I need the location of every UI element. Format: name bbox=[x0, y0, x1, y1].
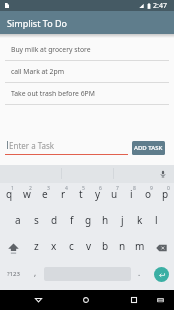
button[interactable]: f bbox=[63, 209, 80, 235]
button[interactable]: call Mark at 2pm bbox=[0, 61, 174, 83]
button[interactable]: Home bbox=[74, 290, 98, 310]
button[interactable]: Enter bbox=[154, 267, 169, 282]
button[interactable]: d bbox=[45, 209, 63, 235]
staticText: t bbox=[79, 187, 83, 201]
button[interactable]: o bbox=[140, 183, 157, 209]
staticText: j bbox=[121, 213, 124, 227]
staticText: p bbox=[162, 187, 169, 201]
button[interactable]: v bbox=[80, 235, 97, 261]
staticText: c bbox=[69, 239, 74, 253]
staticText: f bbox=[70, 213, 74, 227]
staticText: 2:47 bbox=[153, 1, 167, 11]
staticText: h bbox=[102, 213, 109, 227]
button[interactable]: Shift bbox=[0, 235, 27, 261]
staticText: q bbox=[6, 187, 13, 201]
staticText: x bbox=[51, 239, 57, 253]
button[interactable]: x bbox=[45, 235, 63, 261]
button[interactable]: Backspace bbox=[148, 235, 174, 261]
button[interactable]: Recents bbox=[122, 290, 146, 310]
button[interactable]: Voice input bbox=[159, 170, 167, 178]
button[interactable]: r bbox=[54, 183, 72, 209]
staticText: w bbox=[23, 187, 31, 201]
staticText: 5 bbox=[82, 185, 85, 192]
button[interactable]: w bbox=[18, 183, 36, 209]
staticText: m bbox=[135, 239, 145, 253]
staticText: Buy milk at grocery store bbox=[11, 45, 91, 54]
button[interactable]: Back bbox=[26, 290, 50, 310]
staticText: v bbox=[86, 239, 92, 253]
staticText: n bbox=[119, 239, 126, 253]
button[interactable]: , bbox=[27, 261, 44, 287]
staticText: 3 bbox=[47, 185, 50, 192]
staticText: s bbox=[34, 213, 39, 227]
staticText: , bbox=[34, 267, 37, 278]
button[interactable]: a bbox=[9, 209, 27, 235]
button[interactable]: Buy milk at grocery store bbox=[0, 39, 174, 61]
staticText: g bbox=[85, 213, 92, 227]
button[interactable]: k bbox=[131, 209, 148, 235]
button[interactable]: u bbox=[106, 183, 123, 209]
staticText: y bbox=[95, 187, 101, 201]
staticText: 1 bbox=[11, 185, 14, 192]
staticText: z bbox=[34, 239, 39, 253]
staticText: u bbox=[111, 187, 118, 201]
button[interactable]: i bbox=[123, 183, 140, 209]
button[interactable]: c bbox=[63, 235, 80, 261]
button[interactable]: e bbox=[36, 183, 54, 209]
staticText: 2 bbox=[29, 185, 32, 192]
staticText: d bbox=[51, 213, 58, 227]
button[interactable]: Hide keyboard bbox=[148, 290, 172, 310]
staticText: Enter a Task bbox=[9, 140, 55, 151]
button[interactable]: h bbox=[97, 209, 114, 235]
staticText: . bbox=[138, 267, 141, 278]
staticText: 4 bbox=[65, 185, 68, 192]
button[interactable]: p bbox=[157, 183, 174, 209]
button[interactable]: ADD TASK bbox=[132, 141, 165, 155]
button[interactable]: s bbox=[27, 209, 45, 235]
staticText: o bbox=[145, 187, 152, 201]
staticText: ADD TASK bbox=[134, 144, 163, 152]
staticText: 6 bbox=[99, 185, 102, 192]
staticText: 7 bbox=[116, 185, 119, 192]
staticText: i bbox=[130, 187, 133, 201]
button[interactable]: n bbox=[114, 235, 131, 261]
button[interactable]: q bbox=[0, 183, 18, 209]
button[interactable]: l bbox=[148, 209, 165, 235]
staticText: Take out trash before 6PM bbox=[11, 89, 95, 98]
staticText: e bbox=[42, 187, 48, 201]
staticText: a bbox=[15, 213, 21, 227]
staticText: r bbox=[61, 187, 66, 201]
button[interactable]: b bbox=[97, 235, 114, 261]
button[interactable]: j bbox=[114, 209, 131, 235]
staticText: Simplist To Do bbox=[7, 17, 67, 29]
button[interactable]: . bbox=[131, 261, 148, 287]
button[interactable]: ?123 bbox=[0, 261, 27, 287]
staticText: 8 bbox=[133, 185, 136, 192]
staticText: call Mark at 2pm bbox=[11, 67, 64, 76]
staticText: b bbox=[102, 239, 109, 253]
button[interactable]: g bbox=[80, 209, 97, 235]
button[interactable]: t bbox=[72, 183, 89, 209]
button[interactable]: m bbox=[131, 235, 148, 261]
staticText: k bbox=[137, 213, 143, 227]
button[interactable]: y bbox=[89, 183, 106, 209]
staticText: 9 bbox=[150, 185, 153, 192]
button[interactable]: Take out trash before 6PM bbox=[0, 83, 174, 105]
button[interactable]: z bbox=[27, 235, 45, 261]
staticText: 0 bbox=[167, 185, 170, 192]
staticText: ?123 bbox=[7, 270, 20, 278]
staticText: l bbox=[155, 213, 158, 227]
